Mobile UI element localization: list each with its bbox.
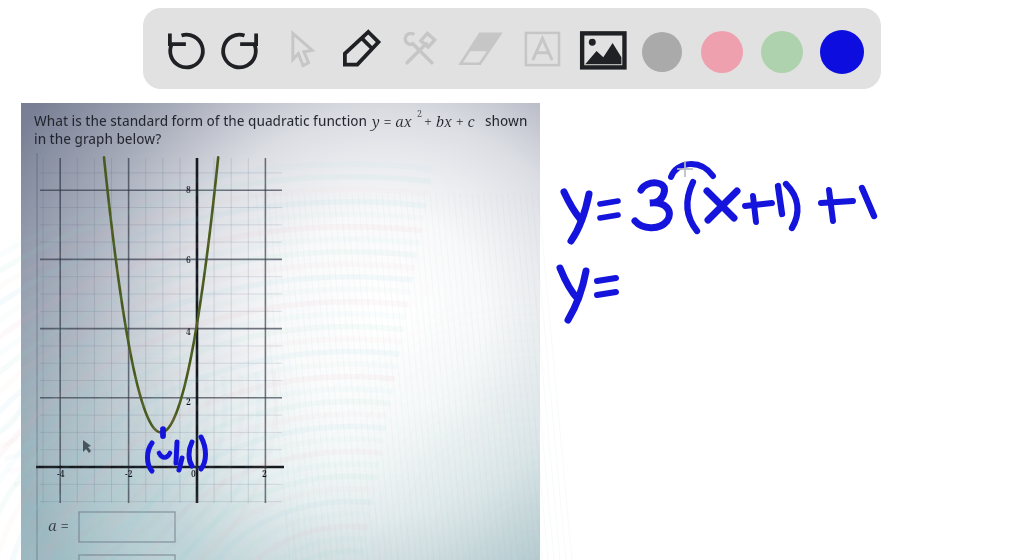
staticText: What is the standard form of the quadrat…: [34, 112, 368, 130]
button[interactable]: Image: [578, 26, 624, 72]
button[interactable]: Green colour: [761, 31, 803, 73]
button[interactable]: Select: [280, 26, 326, 72]
staticText: 2: [417, 107, 423, 119]
staticText: 8: [186, 184, 191, 196]
staticText: -4: [57, 468, 65, 480]
button[interactable]: Worksheet photo: [21, 103, 540, 560]
staticText: 0: [191, 468, 196, 480]
staticText: in the graph below?: [34, 130, 162, 148]
staticText: y = ax: [372, 111, 412, 131]
button[interactable]: Pink colour: [701, 31, 743, 73]
staticText: 6: [186, 254, 191, 266]
staticText: 2: [262, 468, 267, 480]
staticText: + bx + c: [424, 111, 475, 131]
staticText: a =: [48, 515, 69, 535]
staticText: -2: [125, 468, 133, 480]
staticText: 2: [186, 396, 191, 408]
button[interactable]: Redo: [219, 26, 265, 72]
button[interactable]: Undo: [161, 26, 207, 72]
button[interactable]: Tools: [396, 26, 442, 72]
staticText: shown: [485, 112, 528, 130]
button[interactable]: Blue colour: [820, 30, 864, 74]
button[interactable]: Draw: [338, 26, 384, 72]
button[interactable]: Text: [519, 26, 565, 72]
button[interactable]: Eraser: [457, 26, 503, 72]
button[interactable]: Grey colour: [642, 32, 682, 72]
staticText: 4: [186, 326, 191, 338]
